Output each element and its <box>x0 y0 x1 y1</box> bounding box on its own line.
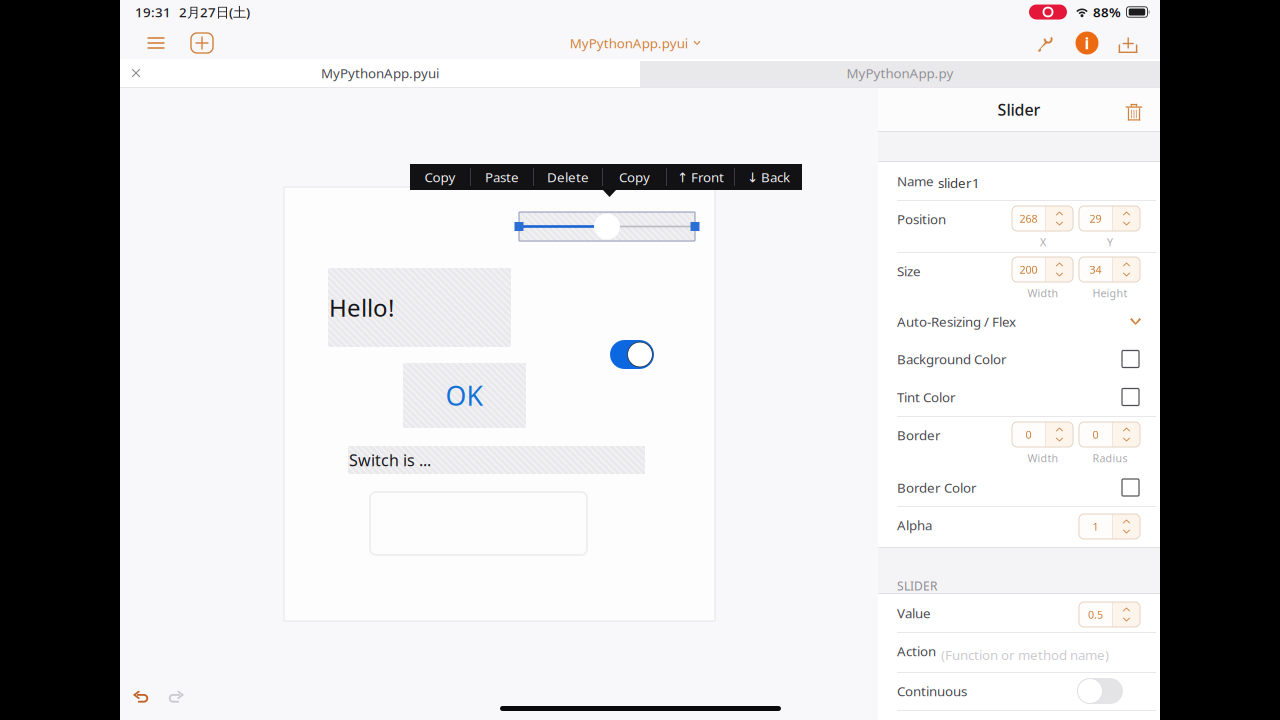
button[interactable]: Alpha <box>878 506 1160 547</box>
staticText: Paste <box>485 168 519 186</box>
button[interactable]: 29 <box>1079 206 1140 231</box>
staticText: SLIDER <box>897 578 937 594</box>
staticText: ↑ Front <box>677 168 724 186</box>
staticText: 0 <box>1025 427 1031 442</box>
button[interactable]: Copy <box>603 164 666 190</box>
button[interactable]: Tint Color <box>878 378 1160 416</box>
button[interactable]: Position <box>878 200 1160 252</box>
button[interactable]: Continuous <box>1077 678 1123 704</box>
staticText: 1 <box>1092 519 1098 534</box>
staticText: i <box>1084 32 1089 54</box>
staticText: Border <box>897 426 941 444</box>
staticText: Switch is ... <box>349 449 431 471</box>
button[interactable]: 34 <box>1079 257 1140 282</box>
button[interactable]: Info <box>1066 25 1108 61</box>
button[interactable]: Close tab <box>120 60 152 86</box>
staticText: MyPythonApp.pyui <box>570 34 688 52</box>
button[interactable]: ↑ Front <box>667 164 734 190</box>
staticText: Name <box>897 172 934 190</box>
button[interactable]: Border <box>878 416 1160 469</box>
staticText: Radius <box>1092 451 1127 465</box>
button[interactable]: New file <box>176 25 228 61</box>
staticText: Slider <box>997 99 1040 120</box>
staticText: Width <box>1027 286 1058 300</box>
button[interactable]: ↓ Back <box>735 164 802 190</box>
staticText: OK <box>445 378 483 413</box>
staticText: 88% <box>1093 3 1121 21</box>
staticText: 268 <box>1019 211 1037 226</box>
staticText: Tint Color <box>897 388 956 406</box>
staticText: 29 <box>1089 211 1101 226</box>
staticText: 19:31 <box>135 3 171 21</box>
button[interactable]: Delete <box>1117 92 1151 126</box>
staticText: 200 <box>1019 262 1037 277</box>
staticText: MyPythonApp.pyui <box>321 64 439 82</box>
button[interactable]: 0 <box>1012 422 1073 447</box>
button[interactable]: Auto-Resizing / Flex <box>878 303 1160 340</box>
button[interactable]: 1 <box>1079 514 1140 539</box>
staticText: Border Color <box>897 479 977 496</box>
staticText: slider1 <box>938 174 980 192</box>
button[interactable]: Border Color <box>878 469 1160 506</box>
button[interactable]: 200 <box>1012 257 1073 282</box>
staticText: MyPythonApp.py <box>846 64 953 82</box>
staticText: Hello! <box>329 292 394 323</box>
button[interactable]: MyPythonApp.pyui <box>561 25 691 61</box>
staticText: (Function or method name) <box>941 646 1109 664</box>
button[interactable]: 268 <box>1012 206 1073 231</box>
staticText: Action <box>897 642 936 660</box>
staticText: Width <box>1027 451 1058 465</box>
button[interactable]: Size <box>878 252 1160 303</box>
staticText: Alpha <box>897 516 932 534</box>
button[interactable]: Name <box>878 162 1160 200</box>
staticText: Height <box>1092 286 1127 300</box>
staticText: Position <box>897 210 946 228</box>
button[interactable]: Copy <box>410 164 470 190</box>
button[interactable]: Redo <box>167 686 185 708</box>
staticText: 34 <box>1089 262 1101 277</box>
button[interactable]: Action <box>878 632 1160 672</box>
staticText: Copy <box>619 168 650 186</box>
staticText: Value <box>897 604 931 622</box>
button[interactable]: Menu <box>136 25 176 61</box>
button[interactable]: Paste <box>471 164 533 190</box>
staticText: Auto-Resizing / Flex <box>897 313 1016 330</box>
button[interactable]: Delete <box>534 164 602 190</box>
staticText: Delete <box>547 168 589 186</box>
button[interactable]: Continuous <box>878 672 1160 710</box>
staticText: Continuous <box>897 682 967 700</box>
button[interactable]: Export <box>1108 25 1148 61</box>
button[interactable]: Background Color <box>878 340 1160 378</box>
staticText: Background Color <box>897 350 1007 368</box>
staticText: 0.5 <box>1088 607 1103 622</box>
staticText: Copy <box>424 168 455 186</box>
button[interactable]: Undo <box>132 686 150 708</box>
staticText: X <box>1040 235 1046 249</box>
staticText: Y <box>1107 235 1113 249</box>
button[interactable]: 0 <box>1079 422 1140 447</box>
button[interactable]: Value <box>878 594 1160 632</box>
button[interactable]: Tools <box>1024 25 1066 61</box>
staticText: Size <box>897 262 921 280</box>
staticText: 2月27日(土) <box>179 3 250 21</box>
staticText: 0 <box>1092 427 1098 442</box>
staticText: ↓ Back <box>747 168 790 186</box>
button[interactable]: 0.5 <box>1079 602 1140 627</box>
